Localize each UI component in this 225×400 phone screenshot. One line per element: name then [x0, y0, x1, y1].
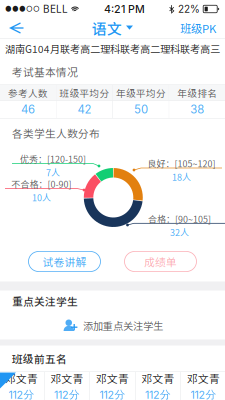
staticText: 良好：[105~120] [147, 157, 215, 170]
staticText: 邓文青 [141, 371, 174, 386]
staticText: 邓文青 [187, 371, 220, 386]
staticText: 试卷讲解 [42, 254, 86, 269]
staticText: 成绩单 [144, 254, 177, 269]
staticText: 112分 [190, 388, 216, 400]
staticText: 112分 [8, 388, 34, 400]
staticText: 年级平均分 [116, 86, 166, 100]
staticText: 各类学生人数分布 [12, 125, 100, 141]
staticText: 班级平均分 [59, 86, 109, 100]
staticText: 50 [134, 103, 148, 116]
button[interactable]: 邓文青 [0, 372, 44, 399]
button[interactable]: 邓文青 [135, 372, 180, 399]
staticText: 112分 [54, 388, 80, 400]
staticText: BELL [40, 3, 71, 15]
button[interactable]: Back [0, 18, 34, 37]
staticText: 42 [77, 103, 91, 116]
staticText: 语文 [92, 17, 122, 39]
button[interactable]: 邓文青 [90, 372, 135, 399]
button[interactable]: 邓文青 [44, 372, 89, 399]
button[interactable]: 试卷讲解 [28, 251, 100, 271]
button[interactable]: 成绩单 [124, 251, 196, 271]
staticText: 112分 [99, 388, 125, 400]
staticText: 邓文青 [5, 371, 38, 386]
staticText: 18人 [172, 170, 191, 183]
staticText: 邓文青 [96, 371, 129, 386]
button[interactable]: 添加重点关注学生 [0, 311, 225, 339]
staticText: ●●●○○ [5, 5, 40, 13]
staticText: 添加重点关注学生 [83, 318, 163, 333]
button[interactable]: 邓文青 [181, 372, 225, 399]
staticText: 7人 [46, 166, 60, 179]
staticText: 22% [175, 3, 203, 15]
staticText: 4:21 PM [104, 2, 145, 15]
staticText: 112分 [145, 388, 171, 400]
staticText: 考试基本情况 [12, 64, 78, 79]
staticText: 年级排名 [177, 86, 217, 100]
staticText: 不合格：[0-90] [11, 177, 71, 190]
button[interactable]: 语文 [86, 14, 139, 42]
staticText: 参考人数 [8, 86, 48, 100]
staticText: 优秀：[120-150] [20, 152, 86, 165]
staticText: 湖南G104月联考高二理科联考高二理科联考高三 [5, 41, 220, 56]
staticText: 合格：[90~105] [148, 212, 211, 225]
staticText: 班级PK [180, 20, 216, 36]
staticText: 10人 [32, 191, 51, 204]
staticText: 邓文青 [50, 371, 83, 386]
button[interactable]: 班级PK [172, 16, 225, 40]
staticText: 38 [190, 103, 204, 116]
staticText: 46 [21, 103, 35, 116]
staticText: 32人 [170, 226, 189, 238]
staticText: 重点关注学生 [12, 293, 78, 309]
staticText: 班级前五名 [12, 351, 67, 366]
